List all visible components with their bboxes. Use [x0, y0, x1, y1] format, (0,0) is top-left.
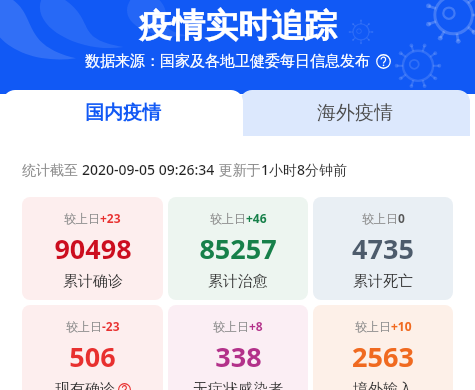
staticText: 累计死亡	[353, 272, 413, 291]
staticText: 4735	[352, 230, 414, 267]
other: 数据来源说明	[376, 54, 391, 69]
staticText: +23	[100, 210, 121, 226]
button[interactable]: 国内疫情	[3, 90, 243, 136]
button[interactable]: 较上日	[168, 305, 308, 390]
button[interactable]: 较上日	[22, 305, 163, 390]
staticText: 85257	[199, 230, 277, 267]
staticText: 现有确诊	[55, 380, 115, 390]
staticText: +10	[391, 318, 412, 334]
staticText: 累计治愈	[208, 272, 268, 291]
staticText: 338	[215, 338, 262, 375]
staticText: 更新于	[215, 160, 261, 179]
staticText: 90498	[54, 230, 132, 267]
staticText: +46	[246, 210, 267, 226]
staticText: 较上日	[362, 211, 398, 226]
button[interactable]: 数据来源：国家及各地卫健委每日信息发布	[85, 52, 391, 71]
button[interactable]: 较上日	[168, 197, 308, 300]
button[interactable]: 海外疫情	[240, 90, 470, 136]
staticText: 1小时8分钟前	[261, 160, 348, 179]
staticText: +8	[249, 318, 263, 334]
staticText: -23	[102, 318, 120, 334]
staticText: 较上日	[210, 211, 246, 226]
staticText: 较上日	[355, 319, 391, 334]
staticText: 2563	[352, 338, 414, 375]
staticText: 累计确诊	[63, 272, 123, 291]
button[interactable]: 较上日	[313, 197, 453, 300]
staticText: 较上日	[64, 211, 100, 226]
staticText: 较上日	[66, 319, 102, 334]
staticText: 0	[398, 210, 405, 226]
button[interactable]: 较上日	[313, 305, 453, 390]
staticText: 疫情实时追踪	[139, 5, 337, 47]
staticText: 2020-09-05 09:26:34	[82, 160, 215, 179]
button[interactable]: 较上日	[22, 197, 163, 300]
staticText: 较上日	[213, 319, 249, 334]
staticText: 海外疫情	[317, 101, 393, 125]
staticText: 数据来源：国家及各地卫健委每日信息发布	[85, 52, 370, 71]
staticText: 境外输入	[353, 380, 413, 390]
staticText: 无症状感染者	[193, 380, 283, 390]
staticText: 国内疫情	[85, 101, 161, 125]
staticText: 506	[69, 338, 116, 375]
staticText: 统计截至	[22, 160, 82, 179]
